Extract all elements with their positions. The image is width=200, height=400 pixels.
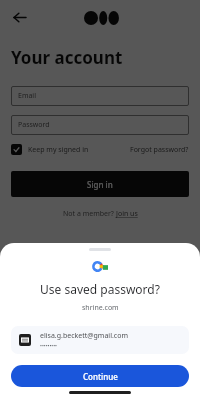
button[interactable]: Password — [11, 115, 189, 135]
staticText: Continue — [83, 371, 118, 382]
staticText: ••••••••• — [40, 343, 57, 350]
staticText: Use saved password? — [40, 281, 160, 297]
button[interactable]: Email — [11, 86, 189, 106]
button[interactable]: Join us — [116, 209, 138, 219]
button[interactable]: Sign in — [11, 171, 189, 197]
staticText: Sign in — [87, 179, 113, 190]
staticText: Your account — [11, 46, 123, 69]
staticText: shrine.com — [82, 303, 119, 313]
staticText: Keep my signed in — [28, 145, 89, 155]
staticText: Not a member? — [63, 209, 116, 219]
staticText: Password — [18, 120, 50, 130]
button[interactable]: Keep my signed in — [11, 144, 89, 155]
button[interactable]: Continue — [11, 365, 189, 387]
button[interactable]: elisa.g.beckett@gmail.com — [11, 326, 189, 354]
staticText: Email — [18, 91, 36, 101]
staticText: elisa.g.beckett@gmail.com — [40, 331, 128, 341]
button[interactable]: Back — [6, 4, 32, 30]
button[interactable]: Forgot password? — [130, 145, 189, 155]
